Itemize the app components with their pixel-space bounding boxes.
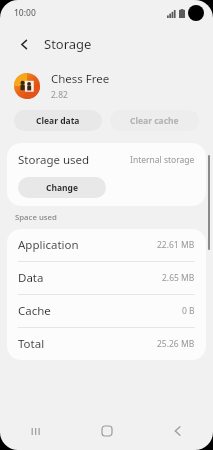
staticText: 0 B — [182, 305, 195, 317]
staticText: Space used — [15, 212, 57, 223]
staticText: Change — [46, 182, 79, 194]
staticText: 25.26 MB — [157, 338, 195, 350]
button[interactable]: Clear cache — [110, 110, 199, 131]
staticText: 2.82 — [51, 89, 68, 101]
button[interactable]: Recent apps — [0, 412, 71, 450]
staticText: Total — [18, 336, 45, 352]
staticText: Cache — [18, 303, 51, 319]
staticText: 10:00 — [14, 7, 36, 19]
staticText: Internal storage — [130, 154, 195, 166]
staticText: Storage used — [18, 152, 90, 168]
staticText: Clear cache — [130, 115, 179, 127]
staticText: Clear data — [36, 115, 80, 127]
button[interactable]: Back — [12, 32, 36, 56]
staticText: 2.65 MB — [162, 272, 195, 284]
button[interactable]: Application — [7, 229, 206, 261]
button[interactable]: Change — [18, 177, 106, 198]
staticText: Data — [18, 270, 44, 286]
button[interactable]: Home — [71, 412, 142, 450]
staticText: Chess Free — [51, 71, 110, 87]
staticText: 22.61 MB — [157, 239, 195, 251]
button[interactable]: Clear data — [14, 110, 102, 131]
button[interactable]: Storage used — [7, 143, 206, 177]
staticText: Application — [18, 237, 79, 253]
button[interactable]: Back — [142, 412, 213, 450]
button[interactable]: Cache — [7, 295, 206, 327]
button[interactable]: Data — [7, 262, 206, 294]
staticText: Storage — [44, 35, 92, 53]
